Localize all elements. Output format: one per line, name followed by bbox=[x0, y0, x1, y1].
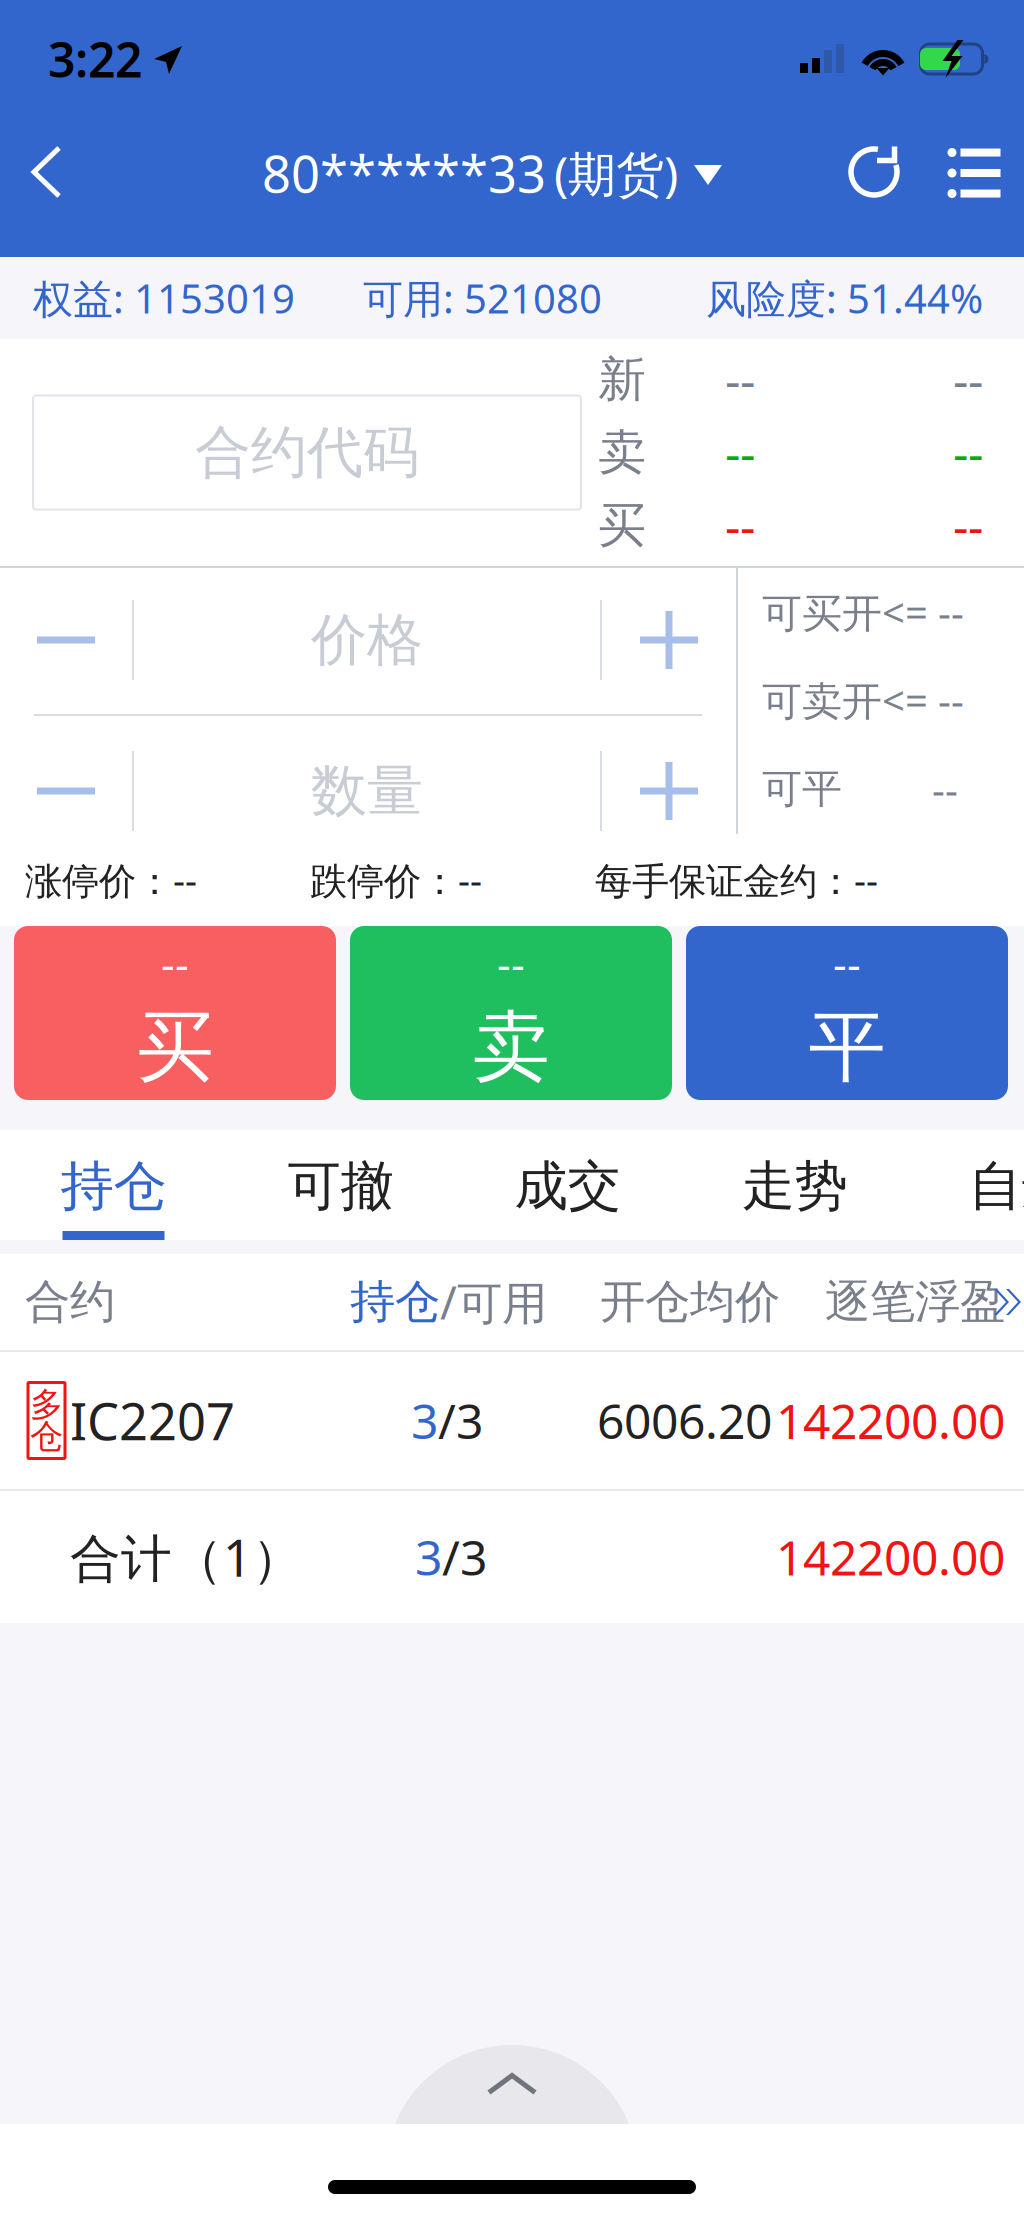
staticText: 142200.00 bbox=[776, 1389, 1005, 1452]
staticText: 3 bbox=[415, 1525, 442, 1589]
staticText: -- bbox=[953, 348, 983, 411]
staticText: 持仓 bbox=[350, 1274, 440, 1330]
staticText: 逐笔浮盈 bbox=[825, 1274, 1005, 1330]
staticText: 142200.00 bbox=[776, 1525, 1005, 1589]
button[interactable]: 走势 bbox=[681, 1130, 908, 1240]
button[interactable]: 80******33 bbox=[262, 123, 730, 223]
staticText: 80******33 bbox=[262, 139, 546, 207]
staticText: IC2207 bbox=[70, 1387, 235, 1454]
staticText: 买 bbox=[136, 1000, 213, 1095]
staticText: 6006.20 bbox=[597, 1389, 772, 1452]
staticText: 自选 bbox=[968, 1153, 1024, 1219]
staticText: 开仓均价 bbox=[600, 1274, 780, 1330]
staticText: 3 bbox=[411, 1389, 438, 1452]
staticText: 卖 bbox=[598, 423, 646, 482]
staticText: -- bbox=[932, 762, 958, 815]
staticText: 新 bbox=[598, 350, 646, 409]
staticText: 3:22 bbox=[48, 27, 142, 91]
button[interactable]: -- bbox=[14, 926, 336, 1100]
staticText: 卖 bbox=[472, 1000, 549, 1095]
staticText: 价格 bbox=[311, 606, 423, 674]
staticText: -- bbox=[497, 935, 525, 992]
staticText: 走势 bbox=[741, 1153, 847, 1219]
staticText: 仓 bbox=[30, 1416, 63, 1457]
staticText: 多 bbox=[30, 1384, 63, 1425]
button[interactable]: Back bbox=[0, 123, 94, 223]
staticText: -- bbox=[725, 421, 755, 484]
button[interactable]: -- bbox=[350, 926, 672, 1100]
staticText: -- bbox=[725, 348, 755, 411]
button[interactable]: Decrease bbox=[0, 568, 132, 714]
staticText: 可买开<= -- bbox=[762, 585, 964, 638]
button[interactable]: 合约代码 bbox=[33, 395, 581, 509]
staticText: 可用: 521080 bbox=[363, 271, 602, 324]
staticText: /3 bbox=[438, 1389, 483, 1452]
button[interactable]: Increase bbox=[602, 568, 736, 714]
button[interactable]: Refresh bbox=[828, 123, 924, 223]
staticText: /3 bbox=[442, 1525, 487, 1589]
staticText: 合约代码 bbox=[195, 418, 419, 487]
button[interactable]: 成交 bbox=[454, 1130, 681, 1240]
staticText: 平 bbox=[808, 1000, 885, 1095]
button[interactable]: 多 bbox=[0, 1352, 1024, 1489]
staticText: 合计（1） bbox=[70, 1523, 303, 1591]
staticText: 涨停价：-- bbox=[25, 855, 197, 905]
staticText: 可平 bbox=[762, 764, 842, 813]
staticText: -- bbox=[953, 421, 983, 484]
staticText: 每手保证金约：-- bbox=[595, 855, 878, 905]
button[interactable]: Decrease bbox=[0, 716, 132, 834]
staticText: -- bbox=[161, 935, 189, 992]
staticText: 风险度: 51.44% bbox=[706, 271, 983, 324]
staticText: 成交 bbox=[514, 1153, 620, 1219]
button[interactable]: Expand bbox=[386, 2045, 638, 2218]
staticText: /可用 bbox=[440, 1272, 547, 1332]
button[interactable]: Menu bbox=[924, 123, 1024, 223]
staticText: 可撤 bbox=[287, 1153, 393, 1219]
staticText: 权益: 1153019 bbox=[33, 271, 295, 324]
button[interactable]: 持仓 bbox=[0, 1130, 227, 1240]
staticText: -- bbox=[953, 494, 983, 557]
button[interactable]: 可撤 bbox=[227, 1130, 454, 1240]
button[interactable]: 自选 bbox=[908, 1130, 1024, 1240]
staticText: -- bbox=[833, 935, 861, 992]
staticText: (期货) bbox=[554, 141, 678, 205]
button[interactable]: Increase bbox=[602, 716, 736, 834]
staticText: 合约 bbox=[25, 1274, 115, 1330]
staticText: 持仓 bbox=[60, 1153, 166, 1219]
button[interactable]: -- bbox=[686, 926, 1008, 1100]
staticText: 跌停价：-- bbox=[310, 855, 482, 905]
staticText: 买 bbox=[598, 496, 646, 555]
staticText: -- bbox=[725, 494, 755, 557]
staticText: 数量 bbox=[311, 757, 423, 825]
staticText: 可卖开<= -- bbox=[762, 673, 964, 726]
